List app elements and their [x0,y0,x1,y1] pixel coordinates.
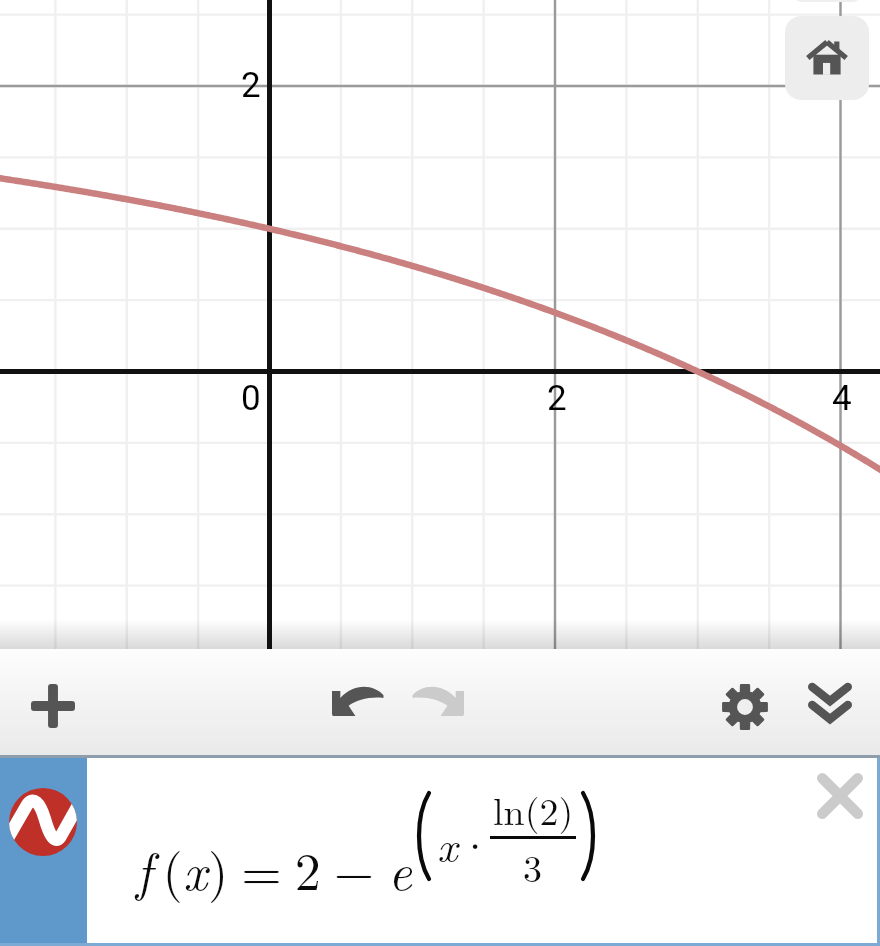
button[interactable]: Home [785,16,869,100]
staticText: 2 [241,65,261,106]
button[interactable]: Zoom controls [792,0,862,2]
button[interactable]: Redo [408,671,468,731]
staticText: e [388,831,412,905]
staticText: 4 [832,378,852,419]
button[interactable]: Undo [328,671,388,731]
staticText: 3 [523,839,543,893]
staticText: x [437,812,458,874]
staticText: f [136,831,152,905]
button[interactable]: Collapse [803,676,857,730]
button[interactable]: Function colour [0,758,87,946]
button[interactable]: Delete expression [800,756,880,836]
staticText: · [458,812,493,874]
staticText: 2 [547,378,567,419]
staticText: ( [152,831,183,905]
button[interactable]: Settings [710,672,780,742]
staticText: 0 [241,378,261,419]
staticText: ln(2) [493,782,574,836]
staticText: ) = 2 − [208,831,388,905]
staticText: x [183,831,208,905]
button[interactable]: Add expression [18,671,88,741]
